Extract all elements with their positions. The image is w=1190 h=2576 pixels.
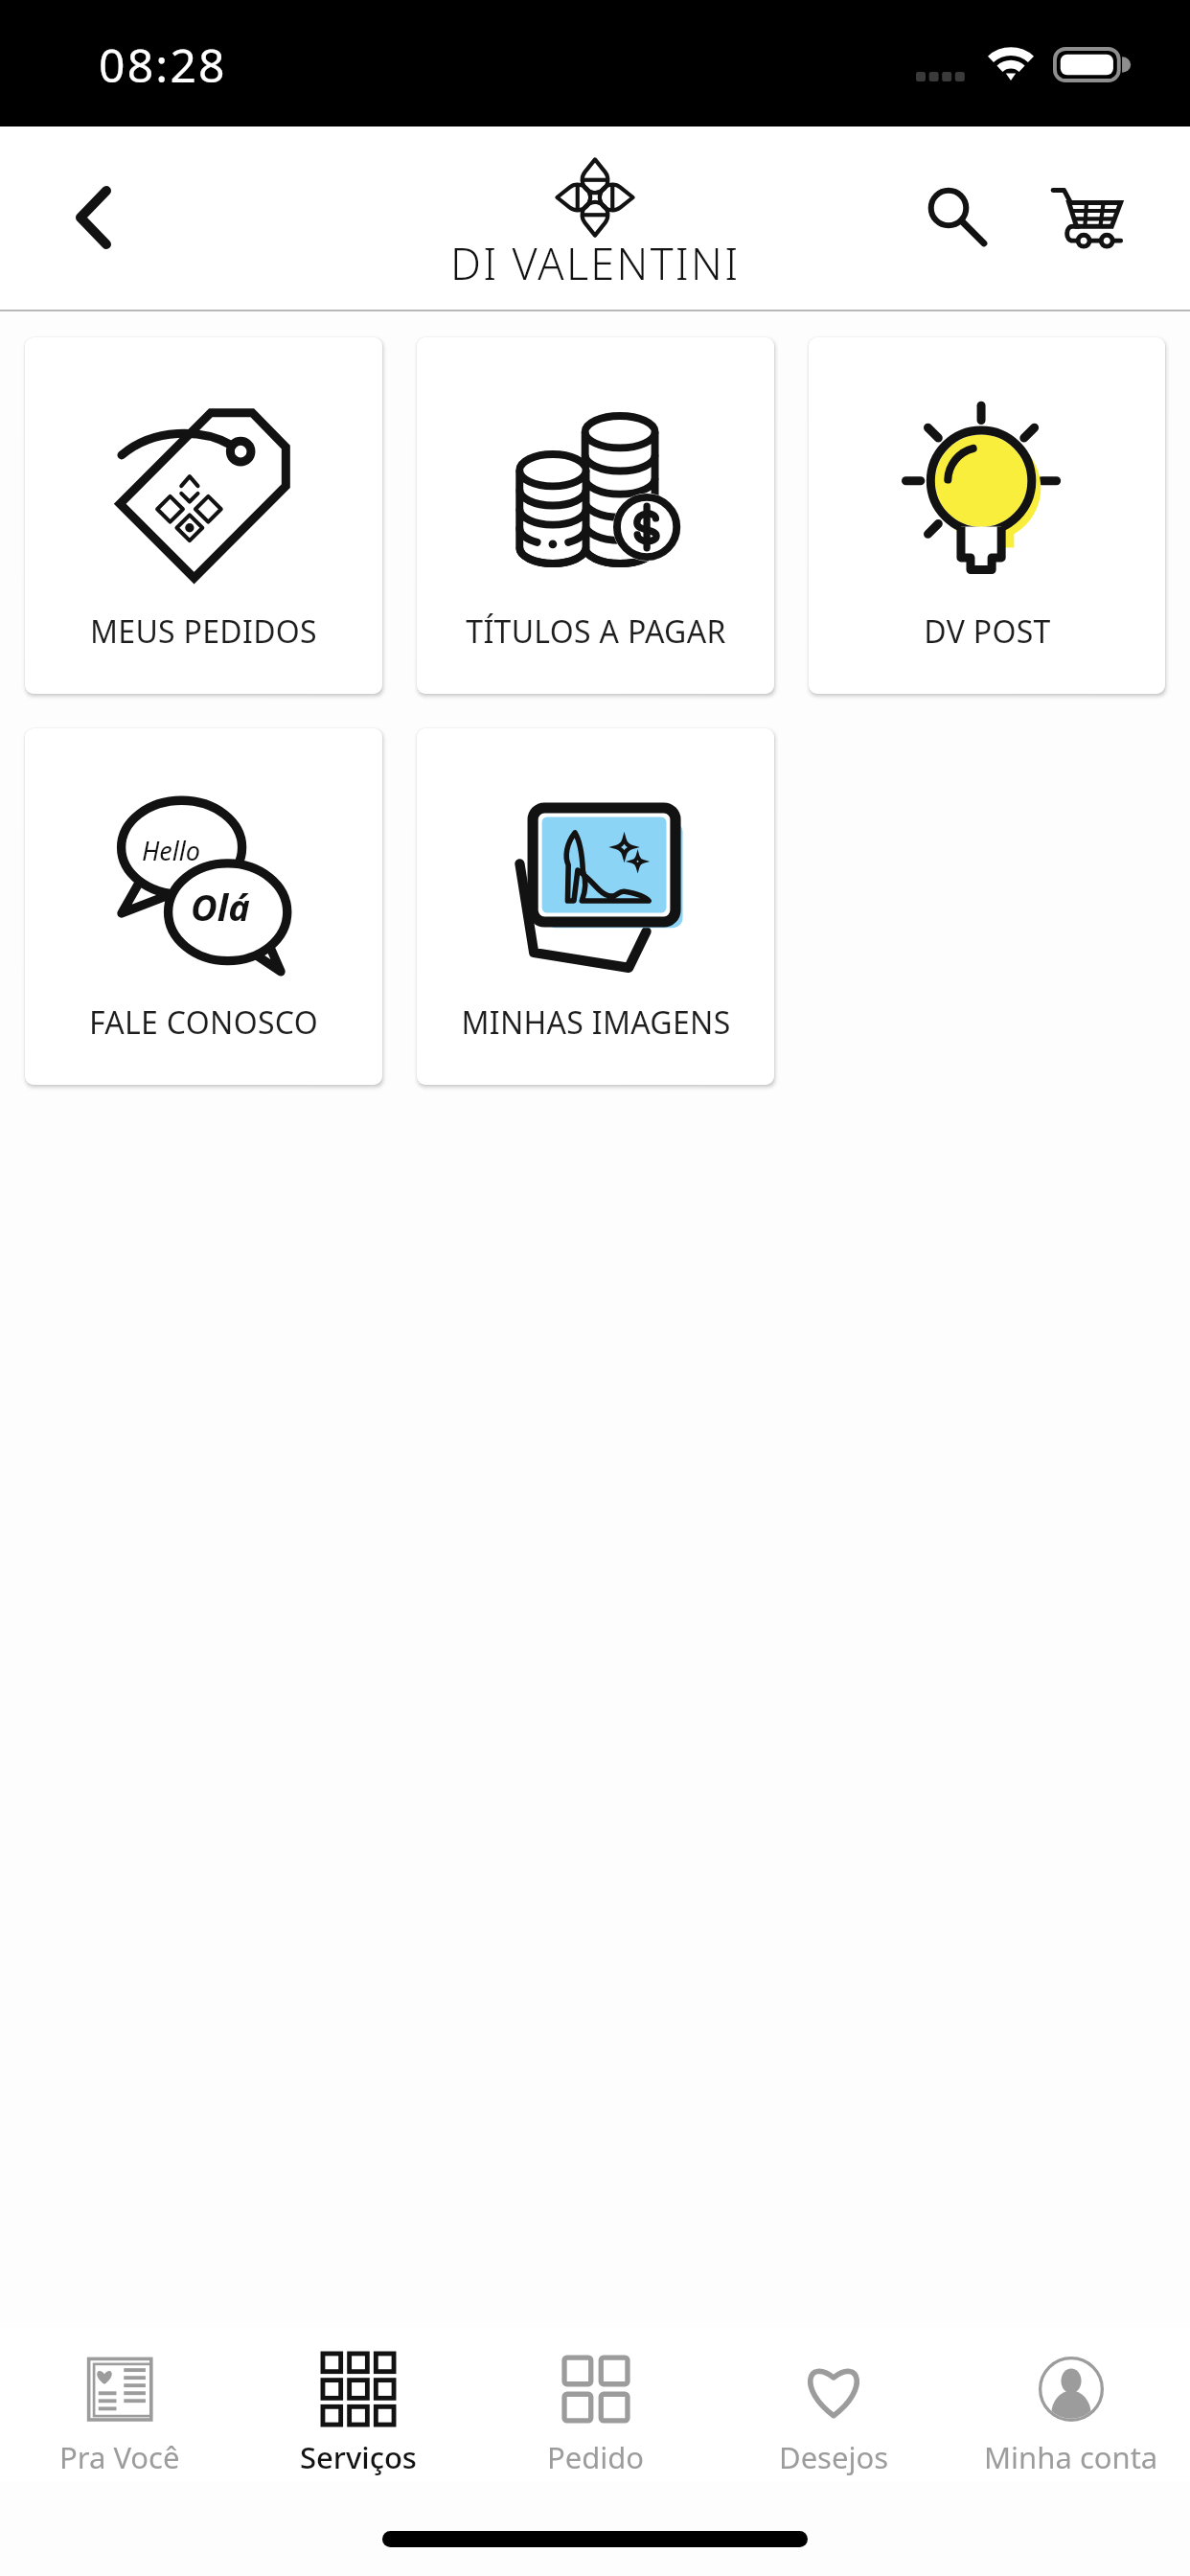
button[interactable]: MINHAS IMAGENS <box>417 728 774 1085</box>
staticText: Pedido <box>547 2437 645 2477</box>
button[interactable]: Serviços <box>239 2329 477 2482</box>
button[interactable]: Pra Você <box>0 2329 239 2482</box>
staticText: Minha conta <box>984 2437 1158 2477</box>
button[interactable]: MEUS PEDIDOS <box>25 337 382 694</box>
staticText: Hello <box>142 833 200 868</box>
staticText: DI VALENTINI <box>450 234 741 292</box>
staticText: TÍTULOS A PAGAR <box>466 610 726 653</box>
button[interactable]: Minha conta <box>952 2329 1190 2482</box>
button[interactable]: Back <box>40 165 146 270</box>
button[interactable]: DV POST <box>809 337 1165 694</box>
button[interactable]: Desejos <box>715 2329 952 2482</box>
staticText: DV POST <box>924 610 1051 653</box>
staticText: 08:28 <box>99 34 227 96</box>
button[interactable]: TÍTULOS A PAGAR <box>417 337 774 694</box>
staticText: Pra Você <box>59 2437 180 2477</box>
staticText: Olá <box>191 882 250 931</box>
button[interactable]: Search <box>904 164 1010 269</box>
button[interactable]: Shopping cart <box>1034 163 1139 268</box>
staticText: MINHAS IMAGENS <box>461 1001 731 1044</box>
staticText: MEUS PEDIDOS <box>90 610 317 653</box>
staticText: Desejos <box>779 2437 889 2477</box>
button[interactable]: Hello <box>25 728 382 1085</box>
staticText: FALE CONOSCO <box>89 1001 318 1044</box>
staticText: Serviços <box>300 2437 417 2477</box>
button[interactable]: Pedido <box>477 2329 715 2482</box>
